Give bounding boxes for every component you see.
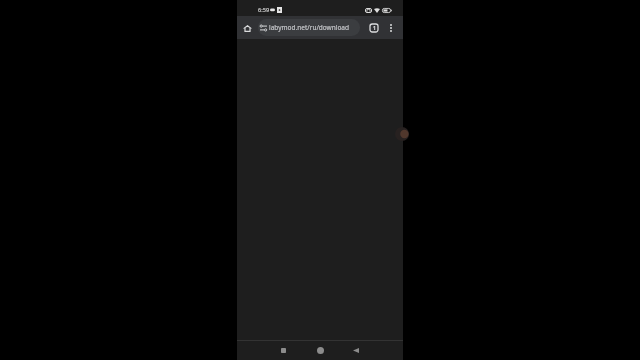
- staticText: 1: [373, 25, 376, 32]
- button[interactable]: Recents: [273, 341, 293, 360]
- button[interactable]: Home: [238, 19, 256, 37]
- button[interactable]: Back: [346, 341, 366, 360]
- staticText: 6:59: [258, 6, 270, 14]
- button[interactable]: Tabs: [365, 19, 383, 37]
- button[interactable]: labymod.net/ru/download: [258, 19, 360, 36]
- staticText: labymod.net/ru/download: [269, 23, 350, 32]
- button[interactable]: More options: [382, 19, 400, 37]
- button[interactable]: Home: [310, 341, 330, 360]
